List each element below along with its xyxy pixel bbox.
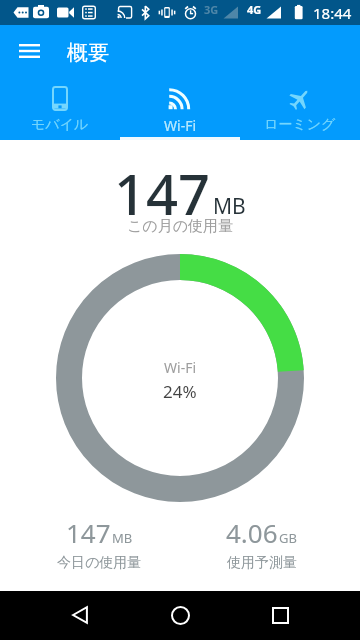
staticText: 4G bbox=[247, 2, 262, 17]
button[interactable]: Back bbox=[56, 591, 104, 639]
button[interactable]: 4.06 bbox=[226, 515, 297, 572]
staticText: モバイル bbox=[31, 116, 89, 134]
button[interactable]: Menu bbox=[5, 27, 53, 75]
staticText: GB bbox=[279, 529, 297, 547]
staticText: 使用予測量 bbox=[227, 554, 297, 572]
staticText: 概要 bbox=[67, 40, 109, 66]
staticText: ローミング bbox=[264, 116, 336, 134]
staticText: MB bbox=[213, 192, 246, 221]
button[interactable]: Wi-Fi bbox=[120, 76, 240, 140]
staticText: 147 bbox=[66, 515, 111, 550]
staticText: 4.06 bbox=[226, 515, 278, 550]
button[interactable]: Recent apps bbox=[256, 591, 304, 639]
staticText: 24% bbox=[163, 380, 197, 403]
staticText: Wi-Fi bbox=[164, 116, 197, 135]
staticText: 3G bbox=[204, 2, 219, 17]
staticText: この月の使用量 bbox=[127, 217, 234, 236]
staticText: 18:44 bbox=[313, 3, 352, 23]
staticText: 今日の使用量 bbox=[57, 554, 142, 572]
staticText: 147 bbox=[114, 155, 211, 231]
button[interactable]: ローミング bbox=[240, 76, 360, 140]
staticText: MB bbox=[112, 529, 133, 547]
button[interactable]: Home bbox=[156, 591, 204, 639]
button[interactable]: モバイル bbox=[0, 76, 120, 140]
staticText: Wi-Fi bbox=[164, 358, 197, 377]
button[interactable]: 147 bbox=[57, 515, 142, 572]
